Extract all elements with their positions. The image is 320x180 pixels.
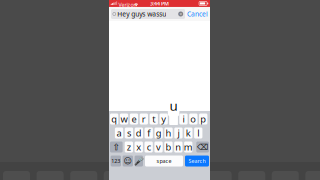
staticText: 3:44 PM — [150, 0, 169, 7]
staticText: e — [131, 113, 136, 125]
staticText: u — [170, 97, 178, 114]
staticText: r — [142, 113, 146, 125]
button[interactable]: r — [140, 113, 148, 124]
button[interactable]: j — [174, 127, 183, 138]
button[interactable]: 🎤 — [135, 155, 143, 166]
button[interactable]: q — [110, 113, 118, 124]
staticText: z — [127, 141, 131, 153]
staticText: n — [175, 141, 181, 153]
staticText: f — [147, 127, 150, 139]
staticText: × — [179, 10, 182, 18]
button[interactable]: Search — [185, 155, 209, 166]
staticText: o — [190, 113, 196, 125]
button[interactable]: Cancel — [186, 9, 208, 19]
staticText: 123 — [111, 157, 120, 165]
button[interactable]: i — [179, 113, 188, 124]
button[interactable]: o — [189, 113, 197, 124]
staticText: c — [147, 141, 151, 153]
button[interactable]: t — [150, 113, 158, 124]
button[interactable]: 123 — [111, 155, 121, 166]
button[interactable]: g — [154, 127, 163, 138]
button[interactable]: f — [145, 127, 153, 138]
staticText: ⇧ — [112, 142, 120, 152]
staticText: d — [136, 127, 142, 139]
button[interactable]: w — [120, 113, 128, 124]
staticText: h — [166, 127, 172, 139]
staticText: p — [200, 113, 206, 125]
button[interactable]: k — [184, 127, 192, 138]
staticText: i — [182, 113, 184, 125]
button[interactable]: space — [145, 155, 183, 166]
staticText: t — [152, 113, 155, 125]
staticText: y — [161, 113, 166, 125]
button[interactable]: d — [135, 127, 143, 138]
button[interactable]: y — [159, 113, 168, 124]
button[interactable]: s — [125, 127, 133, 138]
staticText: ⌫ — [197, 142, 208, 152]
button[interactable]: ☺ — [123, 155, 133, 166]
button[interactable]: m — [184, 141, 192, 152]
button[interactable]: n — [174, 141, 182, 152]
staticText: Hey guys wassu — [117, 10, 166, 18]
button[interactable]: p — [199, 113, 207, 124]
button[interactable]: ⇧ — [110, 141, 123, 152]
staticText: l — [197, 127, 199, 139]
button[interactable]: c — [144, 141, 153, 152]
staticText: w — [121, 113, 128, 125]
staticText: b — [165, 141, 171, 153]
staticText: Verizon — [118, 1, 136, 8]
button[interactable]: x — [135, 141, 143, 152]
staticText: j — [177, 127, 179, 139]
staticText: q — [111, 113, 117, 125]
staticText: Cancel — [187, 10, 208, 18]
button[interactable]: l — [194, 127, 202, 138]
staticText: k — [186, 127, 191, 139]
staticText: a — [117, 127, 122, 139]
staticText: m — [184, 141, 193, 153]
staticText: ☺ — [124, 156, 132, 166]
button[interactable]: ⌫ — [196, 141, 209, 152]
staticText: 🎤 — [134, 156, 144, 165]
button[interactable]: b — [164, 141, 173, 152]
staticText: x — [136, 141, 141, 153]
button[interactable]: z — [125, 141, 133, 152]
staticText: s — [127, 127, 131, 139]
button[interactable]: h — [164, 127, 173, 138]
staticText: g — [156, 127, 162, 139]
staticText: space — [156, 157, 171, 165]
button[interactable]: v — [154, 141, 163, 152]
staticText: Search — [188, 157, 205, 165]
button[interactable]: e — [130, 113, 138, 124]
button[interactable]: a — [115, 127, 123, 138]
staticText: v — [156, 141, 161, 153]
